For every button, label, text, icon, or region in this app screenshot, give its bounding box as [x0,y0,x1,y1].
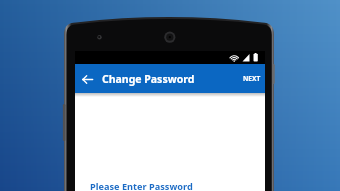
button[interactable]: NEXT [235,66,265,91]
staticText: Please Enter Password [90,180,193,191]
staticText: NEXT [243,74,261,83]
button[interactable]: Navigate up [77,69,97,89]
staticText: Change Password [102,72,195,86]
